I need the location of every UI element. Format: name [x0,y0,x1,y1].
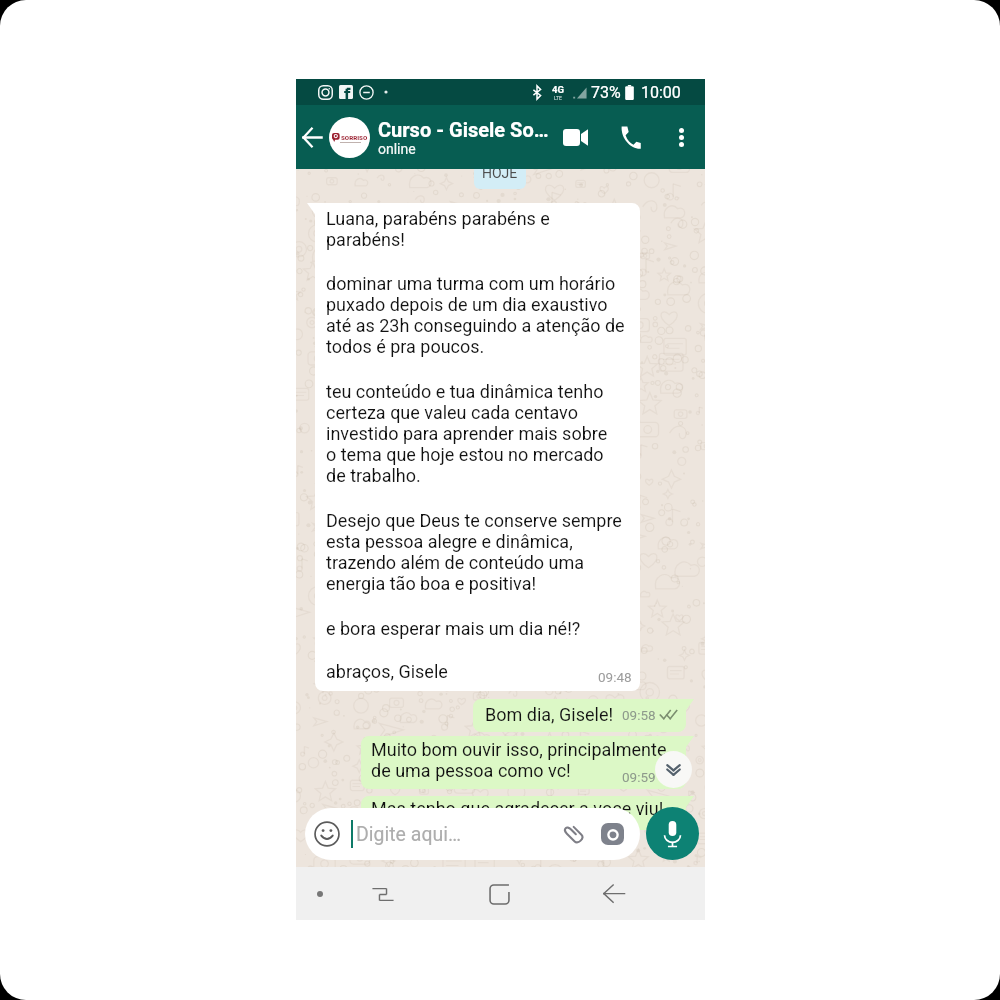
staticText: Digite aqui… [356,823,462,846]
staticText: Bom dia, Gisele! [485,704,614,725]
button[interactable]: Video call [557,105,594,169]
button[interactable]: Camera [601,823,624,845]
button[interactable]: Attach [561,821,587,847]
staticText: dominar uma turma com um horário puxado … [326,273,625,357]
staticText: HOJE [482,165,518,181]
button[interactable]: Home [479,874,519,914]
button[interactable]: More options [666,105,696,169]
staticText: 09:59 [622,769,656,785]
staticText: Desejo que Deus te conserve sempre esta … [326,510,622,594]
button[interactable]: Menu [300,874,340,914]
staticText: teu conteúdo e tua dinâmica tenho certez… [326,381,608,486]
button[interactable]: Recent apps [363,874,403,914]
staticText: online [378,141,416,157]
staticText: Muito bom ouvir isso, principalmente de … [371,739,667,781]
staticText: 09:48 [598,669,632,685]
staticText: Curso - Gisele So… [378,118,549,141]
button[interactable]: Luana, parabéns parabéns e parabéns! [307,203,640,691]
staticText: 73% [591,83,621,102]
staticText: SORRISO [341,134,368,141]
staticText: e bora esperar mais um dia né!? [326,618,581,639]
staticText: LTE [554,95,562,101]
staticText: Mas tenho que agradecer a voce viu! [371,798,664,819]
button[interactable]: Muito bom ouvir isso, principalmente de … [361,736,694,789]
button[interactable]: Back [296,105,328,169]
button[interactable]: Mas tenho que agradecer a voce viu! [361,796,694,830]
button[interactable]: Bom dia, Gisele! [473,699,694,732]
button[interactable]: Digite aqui… [305,808,640,860]
staticText: abraços, Gisele [326,661,448,682]
button[interactable]: Record voice message [646,807,699,860]
button[interactable]: Call [612,105,648,169]
staticText: 4G [552,84,564,95]
staticText: 10:00 [641,83,681,102]
button[interactable]: Scroll to bottom [655,751,692,788]
staticText: 09:58 [622,707,656,723]
staticText: Luana, parabéns parabéns e parabéns! [326,208,550,250]
button[interactable]: Back [594,874,634,914]
